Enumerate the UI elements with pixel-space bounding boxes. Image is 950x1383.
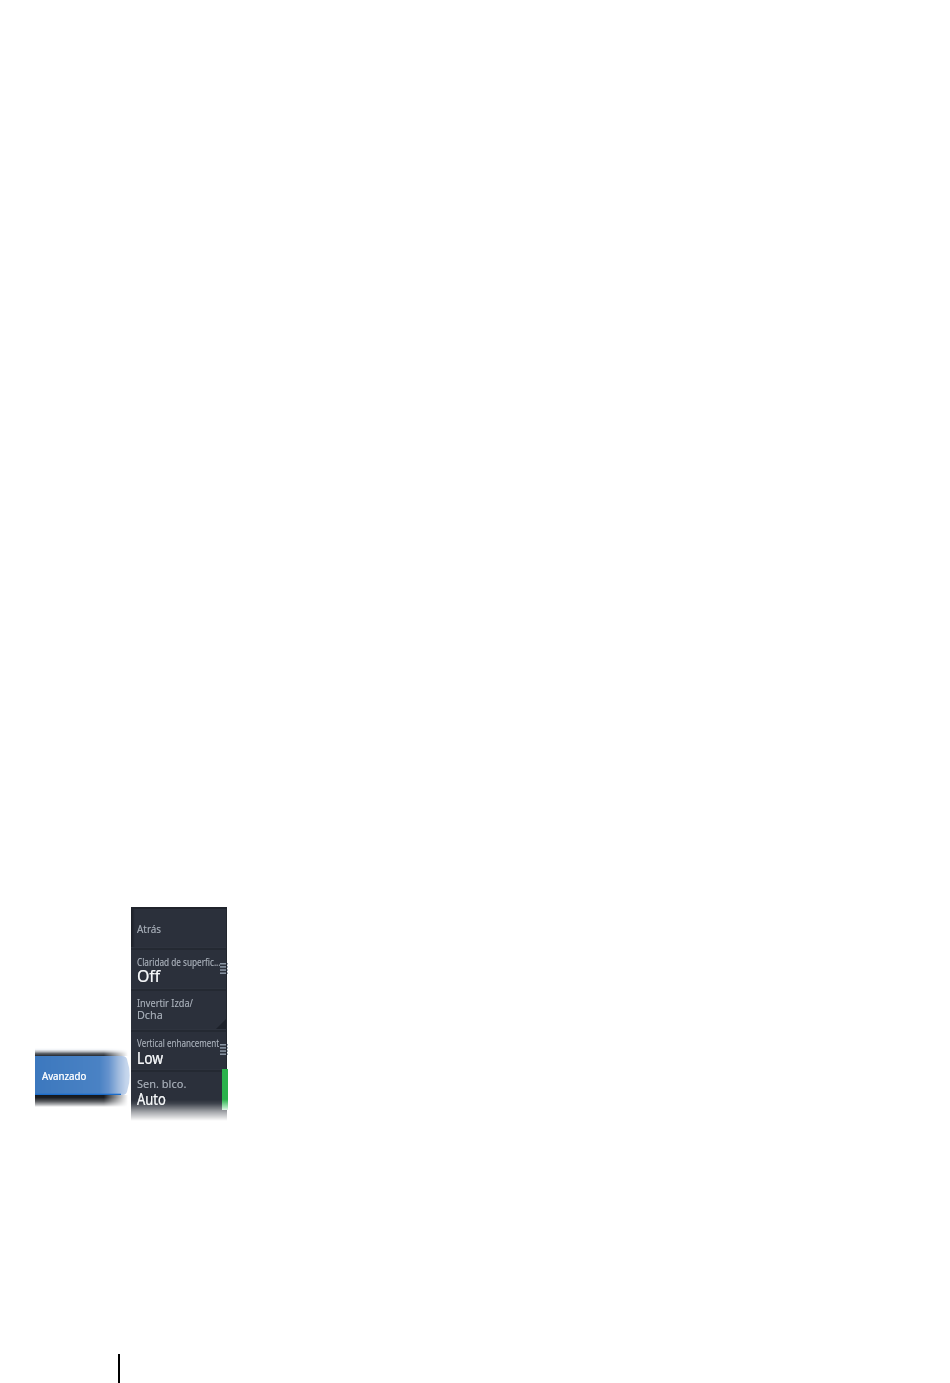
other: Adjust setting (220, 1044, 228, 1056)
staticText: Auto (137, 1088, 166, 1110)
button[interactable]: Avanzado (35, 1048, 131, 1112)
button[interactable]: Invertir Izda/ (131, 990, 227, 1030)
staticText: Avanzado (42, 1068, 87, 1083)
staticText: Vertical enhancement (137, 1035, 219, 1050)
button[interactable]: Atrás (131, 907, 227, 948)
staticText: Sen. blco. (137, 1076, 187, 1091)
staticText: Invertir Izda/ (137, 995, 194, 1010)
staticText: Claridad de superfic... (137, 954, 221, 969)
staticText: Atrás (137, 921, 161, 936)
button[interactable]: Claridad de superfic... (131, 949, 227, 989)
button[interactable]: Vertical enhancement (131, 1031, 227, 1070)
staticText: Dcha (137, 1007, 163, 1022)
button[interactable]: Sen. blco. (131, 1071, 227, 1116)
staticText: Low (137, 1047, 164, 1069)
other: Adjust setting (220, 963, 228, 975)
staticText: Off (137, 965, 161, 987)
